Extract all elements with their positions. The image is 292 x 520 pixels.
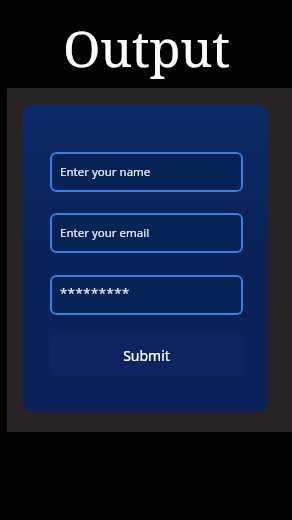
staticText: Enter your name	[60, 164, 151, 180]
staticText: Enter your email	[60, 225, 150, 241]
button[interactable]: Submit	[50, 334, 243, 376]
staticText: *********	[60, 284, 130, 302]
button[interactable]: *********	[50, 275, 243, 315]
staticText: Output	[63, 14, 230, 82]
staticText: Submit	[123, 346, 170, 365]
button[interactable]: Enter your email	[50, 213, 243, 253]
button[interactable]: Enter your name	[50, 152, 243, 192]
